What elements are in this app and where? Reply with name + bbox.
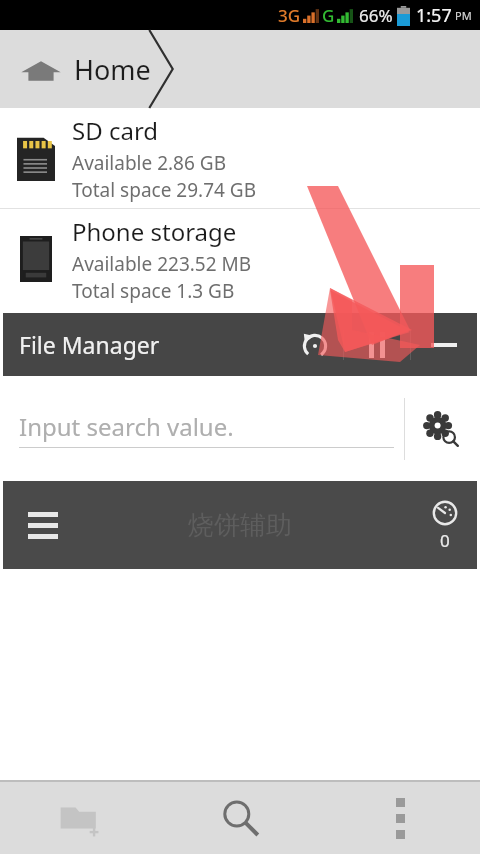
staticText: Available 2.86 GB bbox=[72, 150, 226, 176]
button[interactable]: More options bbox=[320, 782, 480, 854]
staticText: 3G bbox=[278, 4, 301, 27]
staticText: Total space 29.74 GB bbox=[72, 177, 256, 203]
button[interactable]: Phone storage bbox=[0, 209, 480, 309]
button[interactable]: Search bbox=[160, 782, 320, 854]
button[interactable]: SD card bbox=[0, 108, 480, 208]
staticText: Phone storage bbox=[72, 215, 237, 248]
staticText: SD card bbox=[72, 114, 159, 147]
staticText: 1:57 bbox=[416, 3, 452, 28]
staticText: 66% bbox=[359, 4, 393, 27]
staticText: Home bbox=[74, 51, 151, 88]
staticText: G bbox=[322, 4, 335, 27]
button[interactable]: Menu bbox=[11, 493, 75, 557]
staticText: Input search value. bbox=[19, 410, 234, 443]
button[interactable]: Search settings bbox=[405, 376, 477, 481]
button[interactable]: New folder bbox=[0, 782, 160, 854]
staticText: File Manager bbox=[19, 329, 160, 360]
button[interactable]: Home bbox=[0, 30, 167, 108]
button[interactable]: Minimize bbox=[411, 313, 477, 376]
staticText: Total space 1.3 GB bbox=[72, 278, 235, 304]
button[interactable]: Restore bbox=[287, 313, 343, 376]
staticText: 0 bbox=[440, 529, 450, 552]
staticText: PM bbox=[455, 8, 472, 23]
button[interactable]: Pause bbox=[344, 313, 410, 376]
button[interactable]: Speed bbox=[425, 495, 465, 556]
staticText: Available 223.52 MB bbox=[72, 251, 252, 277]
button[interactable]: Input search value. bbox=[19, 410, 394, 448]
staticText: 烧饼辅助 bbox=[188, 509, 292, 542]
